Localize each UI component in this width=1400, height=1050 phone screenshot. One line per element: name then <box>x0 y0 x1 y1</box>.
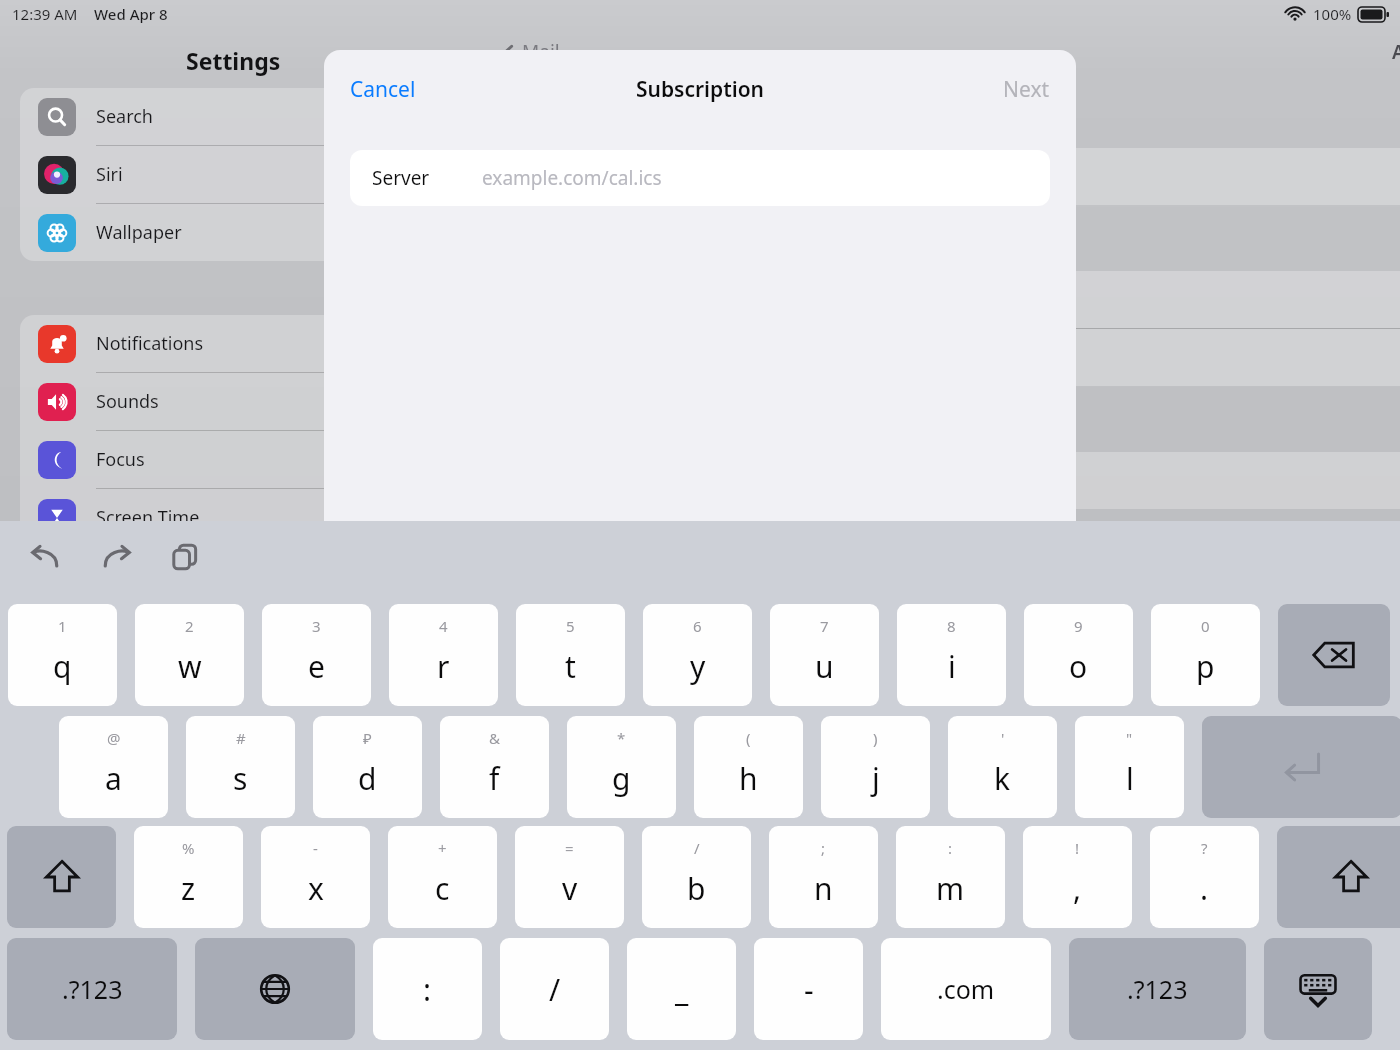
button[interactable]: Wallpaper <box>20 204 480 261</box>
button[interactable]: / <box>642 826 751 928</box>
staticText: 3 <box>312 616 321 636</box>
button[interactable]: .com <box>881 938 1051 1040</box>
staticText: Sounds <box>96 389 159 414</box>
staticText: r <box>437 646 450 687</box>
button[interactable] <box>500 452 1400 509</box>
staticText: ; <box>821 838 826 858</box>
button[interactable]: 6 <box>643 604 752 706</box>
button[interactable]: Search <box>20 88 480 145</box>
button[interactable]: ' <box>948 716 1057 818</box>
button[interactable]: : <box>896 826 1005 928</box>
staticText: e <box>308 646 325 687</box>
button[interactable]: # <box>186 716 295 818</box>
staticText: # <box>236 728 246 748</box>
staticText: / <box>694 838 700 858</box>
staticText: c <box>435 868 450 909</box>
staticText: a <box>105 758 122 799</box>
staticText: Search <box>96 104 153 129</box>
staticText: Wallpaper <box>96 220 182 245</box>
button[interactable]: Cancel <box>336 67 430 112</box>
button[interactable]: Paste <box>166 538 204 576</box>
button[interactable]: ( <box>694 716 803 818</box>
button[interactable]: @ <box>59 716 168 818</box>
button[interactable]: Shift <box>1277 826 1400 928</box>
button[interactable]: Focus <box>20 431 480 488</box>
button[interactable]: Sounds <box>20 373 480 430</box>
button[interactable]: ; <box>769 826 878 928</box>
button[interactable]: / <box>500 938 609 1040</box>
staticText: / <box>549 969 561 1010</box>
staticText: Screen Time <box>96 505 200 530</box>
staticText: p <box>1196 646 1215 687</box>
staticText: f <box>489 758 500 799</box>
button[interactable]: .?123 <box>1069 938 1246 1040</box>
button[interactable]: Switch keyboard <box>195 938 355 1040</box>
staticText: 9 <box>1074 616 1083 636</box>
button[interactable]: - <box>754 938 863 1040</box>
staticText: - <box>313 838 318 858</box>
staticText: ! <box>1075 838 1080 858</box>
button[interactable]: Hide keyboard <box>1264 938 1372 1040</box>
button[interactable]: * <box>567 716 676 818</box>
staticText: : <box>423 969 432 1010</box>
button[interactable]: % <box>134 826 243 928</box>
staticText: Settings <box>186 45 281 76</box>
staticText: & <box>489 728 500 748</box>
staticText: Cancel <box>350 75 416 104</box>
button[interactable]: 8 <box>897 604 1006 706</box>
button[interactable]: = <box>515 826 624 928</box>
button[interactable]: - <box>261 826 370 928</box>
button[interactable]: Server <box>350 150 1050 206</box>
staticText: 8 <box>947 616 956 636</box>
staticText: ? <box>1201 838 1208 858</box>
button[interactable]: 0 <box>1151 604 1260 706</box>
button[interactable]: Next <box>989 67 1064 112</box>
button[interactable]: : <box>373 938 482 1040</box>
button[interactable] <box>500 148 1400 205</box>
button[interactable]: & <box>440 716 549 818</box>
staticText: ' <box>1001 728 1005 748</box>
button[interactable]: Redo <box>98 538 136 576</box>
button[interactable]: 1 <box>8 604 117 706</box>
staticText: l <box>1126 758 1134 799</box>
staticText: 2 <box>185 616 194 636</box>
button[interactable]: ? <box>1150 826 1259 928</box>
staticText: " <box>1126 728 1133 748</box>
staticText: 12:39 AM <box>12 4 78 24</box>
button[interactable]: Screen Time <box>20 489 480 546</box>
button[interactable]: ! <box>1023 826 1132 928</box>
staticText: n <box>814 868 833 909</box>
staticText: 7 <box>820 616 829 636</box>
button[interactable]: 4 <box>389 604 498 706</box>
button[interactable]: _ <box>627 938 736 1040</box>
button[interactable]: 7 <box>770 604 879 706</box>
button[interactable]: ₽ <box>313 716 422 818</box>
staticText: , <box>1073 868 1082 909</box>
button[interactable]: 2 <box>135 604 244 706</box>
staticText: example.com/cal.ics <box>482 165 662 191</box>
staticText: ( <box>746 728 751 748</box>
button[interactable] <box>500 329 1400 386</box>
staticText: q <box>53 646 72 687</box>
staticText: Subscription <box>636 75 765 104</box>
button[interactable]: + <box>388 826 497 928</box>
button[interactable]: 9 <box>1024 604 1133 706</box>
staticText: 1 <box>58 616 67 636</box>
button[interactable]: ) <box>821 716 930 818</box>
button[interactable]: 5 <box>516 604 625 706</box>
button[interactable]: Notifications <box>20 315 480 372</box>
button[interactable]: " <box>1075 716 1184 818</box>
staticText: s <box>233 758 248 799</box>
button[interactable]: Delete <box>1278 604 1390 706</box>
button[interactable]: 3 <box>262 604 371 706</box>
button[interactable]: Siri <box>20 146 480 203</box>
staticText: _ <box>675 969 689 1010</box>
button[interactable]: Undo <box>26 538 64 576</box>
button[interactable]: Shift <box>7 826 116 928</box>
staticText: t <box>565 646 576 687</box>
staticText: h <box>739 758 758 799</box>
button[interactable] <box>500 271 1400 328</box>
button[interactable]: .?123 <box>7 938 177 1040</box>
staticText: ₽ <box>363 728 372 748</box>
